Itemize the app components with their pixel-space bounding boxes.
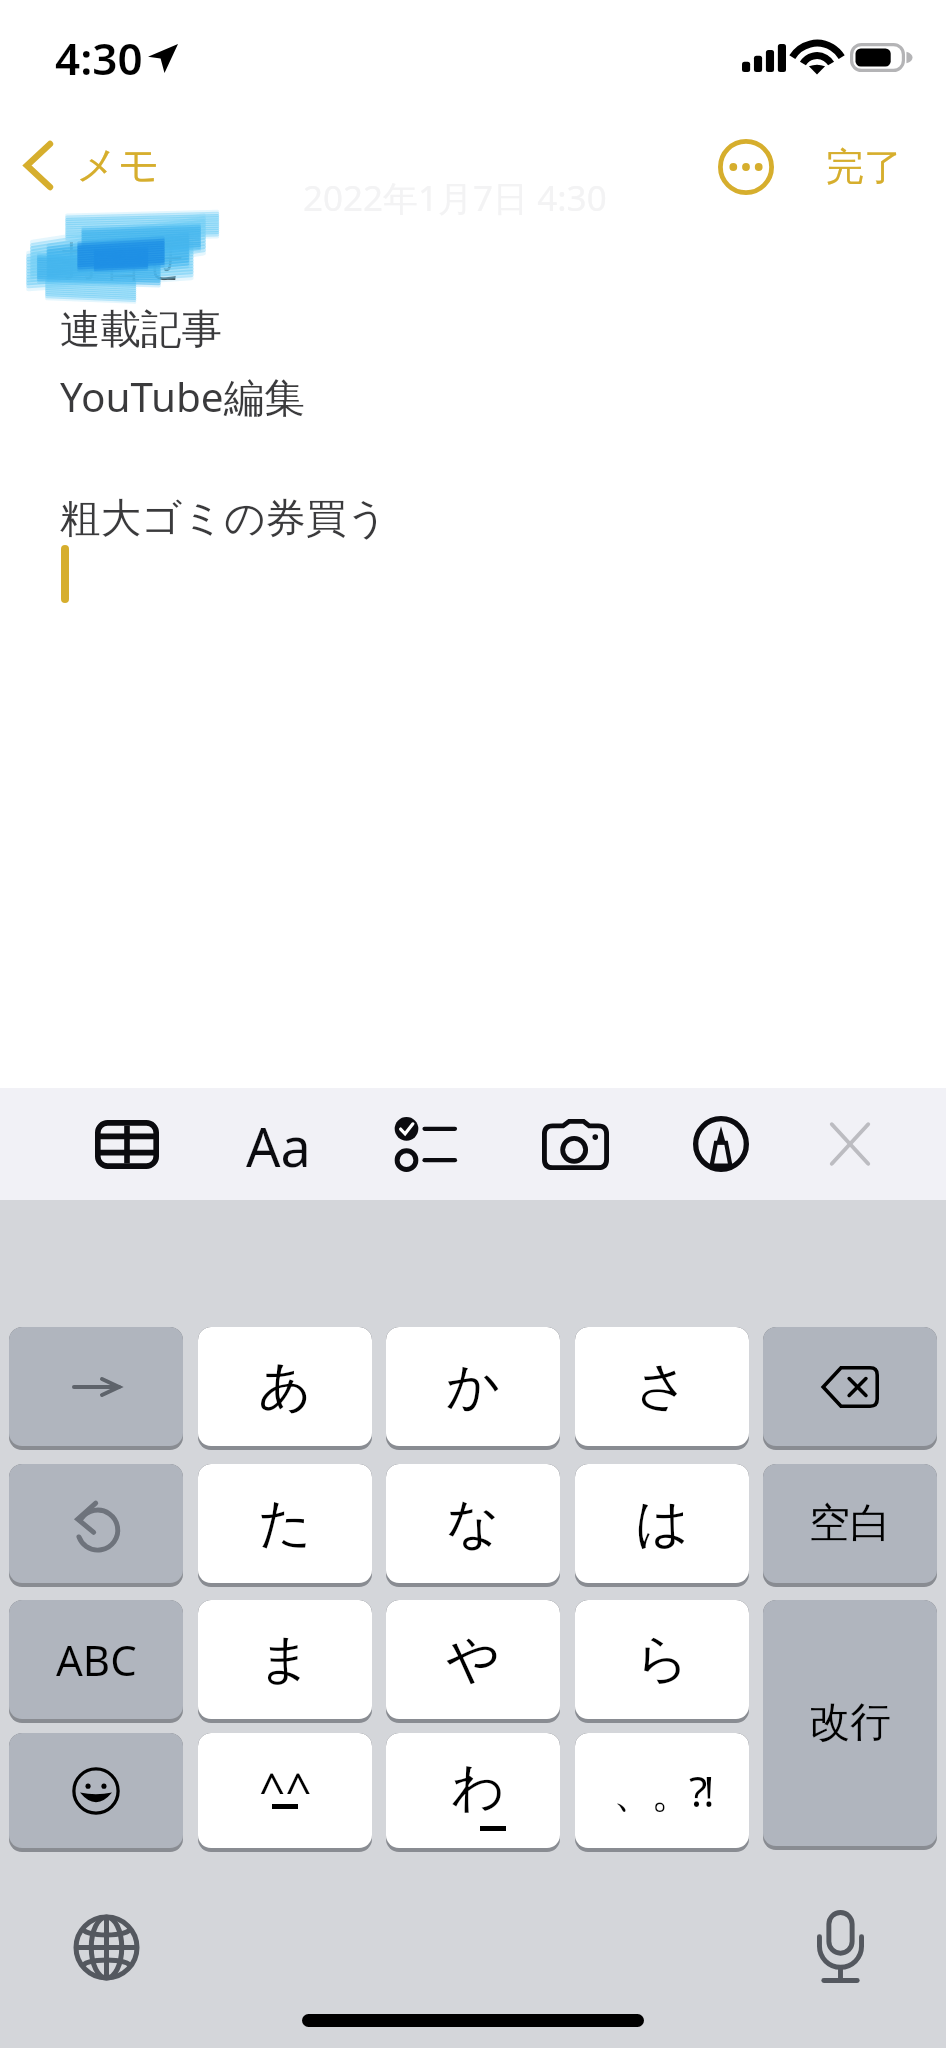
- staticText: YouTube編集: [60, 369, 305, 424]
- button[interactable]: ^^: [198, 1733, 372, 1852]
- button[interactable]: ら: [575, 1600, 749, 1723]
- staticText: 、。?!: [613, 1762, 711, 1819]
- staticText: 打合せ: [62, 236, 185, 287]
- staticText: 改行: [809, 1697, 891, 1749]
- button[interactable]: は: [575, 1464, 749, 1587]
- staticText: 粗大ゴミの券買う: [60, 493, 388, 544]
- button[interactable]: 完了: [808, 135, 920, 199]
- staticText: Aa: [246, 1109, 311, 1183]
- staticText: あ: [258, 1353, 313, 1420]
- button[interactable]: ABC: [9, 1600, 183, 1723]
- button[interactable]: 改行: [763, 1600, 937, 1850]
- button[interactable]: さ: [575, 1327, 749, 1450]
- button[interactable]: Close keyboard: [804, 1088, 896, 1200]
- button[interactable]: Markup: [675, 1088, 767, 1200]
- button[interactable]: か: [386, 1327, 560, 1450]
- staticText: 空白: [809, 1498, 891, 1550]
- staticText: 連載記事: [60, 304, 222, 355]
- button[interactable]: メモ: [10, 133, 178, 197]
- staticText: ら: [635, 1626, 690, 1693]
- button[interactable]: More options: [702, 123, 790, 211]
- staticText: は: [635, 1490, 690, 1557]
- staticText: 2022年1月7日 4:30: [303, 174, 607, 222]
- button[interactable]: Checklist: [378, 1088, 470, 1200]
- staticText: 完了: [826, 143, 902, 191]
- staticText: ^^: [259, 1757, 312, 1820]
- staticText: わ: [451, 1754, 506, 1821]
- button[interactable]: や: [386, 1600, 560, 1723]
- button[interactable]: Undo: [9, 1464, 183, 1587]
- button[interactable]: Dictation: [794, 1900, 886, 1992]
- button[interactable]: Text format: [232, 1088, 324, 1200]
- button[interactable]: Move cursor right: [9, 1327, 183, 1450]
- button[interactable]: ま: [198, 1600, 372, 1723]
- staticText: な: [446, 1490, 501, 1557]
- button[interactable]: た: [198, 1464, 372, 1587]
- button[interactable]: Change keyboard: [61, 1902, 151, 1992]
- button[interactable]: あ: [198, 1327, 372, 1450]
- button[interactable]: 、。?!: [575, 1733, 749, 1852]
- staticText: 4:30: [55, 28, 143, 88]
- button[interactable]: わ: [386, 1733, 560, 1852]
- button[interactable]: Camera: [529, 1088, 621, 1200]
- staticText: さ: [635, 1353, 690, 1420]
- staticText: か: [446, 1353, 501, 1420]
- button[interactable]: Emoji: [9, 1733, 183, 1852]
- staticText: た: [258, 1490, 313, 1557]
- staticText: メモ: [76, 140, 160, 192]
- staticText: や: [446, 1626, 501, 1693]
- button[interactable]: な: [386, 1464, 560, 1587]
- staticText: ABC: [56, 1631, 137, 1688]
- button[interactable]: Delete: [763, 1327, 937, 1450]
- button[interactable]: 空白: [763, 1464, 937, 1587]
- staticText: ま: [258, 1626, 313, 1693]
- button[interactable]: Insert table: [81, 1088, 173, 1200]
